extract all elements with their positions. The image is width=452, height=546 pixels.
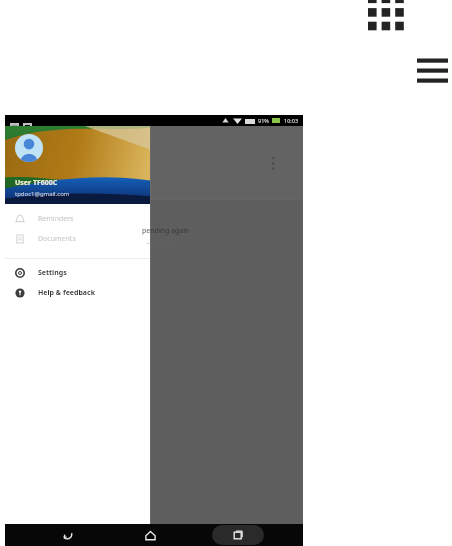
staticText: Settings <box>38 268 67 278</box>
button[interactable]: Documents <box>5 229 150 249</box>
staticText: ...................... <box>146 238 182 246</box>
button[interactable]: Recent apps <box>212 525 264 545</box>
staticText: pending again <box>142 226 190 236</box>
button[interactable]: Settings <box>5 263 150 283</box>
staticText: tpdoc1@gmail.com <box>15 190 70 198</box>
button[interactable]: Help & feedback <box>5 283 150 303</box>
button[interactable]: Apps <box>367 0 411 30</box>
staticText: Documents <box>38 234 76 244</box>
button[interactable] <box>15 134 43 162</box>
button[interactable]: Home <box>128 524 172 546</box>
staticText: 91% <box>258 117 269 124</box>
button[interactable]: Reminders <box>5 209 150 229</box>
staticText: Reminders <box>38 214 74 224</box>
staticText: User TF600C <box>15 178 58 188</box>
staticText: 10:03 <box>284 117 299 124</box>
staticText: Help & feedback <box>38 288 95 298</box>
button[interactable]: Menu <box>415 55 451 87</box>
button[interactable]: Back <box>45 524 89 546</box>
